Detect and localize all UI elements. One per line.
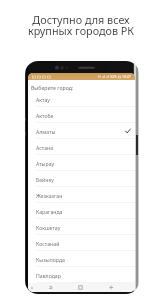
button[interactable]: Home [77, 284, 84, 291]
staticText: Караганда [36, 208, 63, 215]
staticText: Актобе [36, 112, 54, 119]
button[interactable]: Кызылорда [28, 251, 135, 267]
staticText: Кокшетау [36, 224, 61, 231]
staticText: Атырау [36, 160, 55, 167]
button[interactable]: Караганда [28, 203, 135, 219]
staticText: Бейнеу [36, 176, 54, 183]
button[interactable]: Атырау [28, 155, 135, 171]
staticText: 10:47 [122, 74, 131, 79]
staticText: Выберите город: [31, 84, 74, 91]
button[interactable]: Павлодар [28, 267, 135, 283]
button[interactable]: Астана [28, 139, 135, 155]
button[interactable]: Актобе [28, 107, 135, 123]
staticText: Жезказган [36, 192, 63, 199]
staticText: Кызылорда [36, 256, 65, 263]
staticText: Астана [36, 144, 54, 151]
button[interactable]: Кокшетау [28, 219, 135, 235]
staticText: 32% [110, 74, 117, 79]
staticText: Костанай [36, 240, 60, 247]
button[interactable]: Бейнеу [28, 171, 135, 187]
button[interactable]: Back [108, 284, 115, 291]
button[interactable]: Костанай [28, 235, 135, 251]
button[interactable]: Актау [28, 91, 135, 107]
button[interactable]: Жезказган [28, 187, 135, 203]
button[interactable]: Recents [47, 284, 54, 291]
staticText: Актау [36, 96, 50, 103]
button[interactable]: Алматы [28, 123, 135, 139]
staticText: Павлодар [36, 272, 61, 279]
staticText: Доступно для всех крупных городов РК [0, 12, 164, 38]
staticText: Алматы [36, 128, 56, 135]
